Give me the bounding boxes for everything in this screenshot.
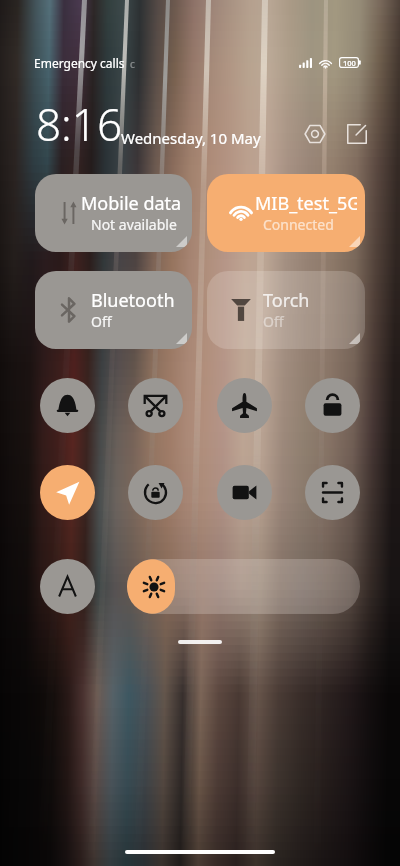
button[interactable]	[127, 559, 360, 614]
button[interactable]: Lock screen	[305, 378, 360, 433]
staticText: 100	[343, 58, 356, 68]
button[interactable]: Scanner	[305, 465, 360, 520]
button[interactable]: Auto rotate	[128, 465, 183, 520]
staticText: c	[130, 57, 135, 71]
staticText: Wednesday, 10 May	[121, 128, 261, 148]
button[interactable]: Torch	[207, 271, 365, 349]
button[interactable]: Mobile data	[35, 174, 192, 252]
button[interactable]: MIB_test_5G	[207, 174, 365, 252]
staticText: Torch	[263, 288, 310, 313]
button[interactable]: Auto brightness	[40, 559, 95, 614]
button[interactable]: Edit tiles	[340, 117, 374, 151]
button[interactable]: Ringer	[40, 378, 95, 433]
staticText: Emergency calls	[34, 55, 125, 71]
staticText: 8:16	[36, 94, 123, 154]
staticText: Not available	[91, 215, 177, 234]
staticText: Connected	[263, 215, 334, 234]
staticText: MIB_test_5G	[255, 191, 357, 216]
button[interactable]: Settings	[298, 117, 332, 151]
button[interactable]: Screen recorder	[217, 465, 272, 520]
button[interactable]: Screenshot	[128, 378, 183, 433]
staticText: Mobile data	[81, 191, 182, 216]
staticText: Off	[263, 312, 284, 331]
staticText: Bluetooth	[91, 288, 175, 313]
button[interactable]: Bluetooth	[35, 271, 192, 349]
button[interactable]: Aeroplane mode	[217, 378, 272, 433]
button[interactable]: Location	[40, 465, 95, 520]
staticText: Off	[91, 312, 112, 331]
